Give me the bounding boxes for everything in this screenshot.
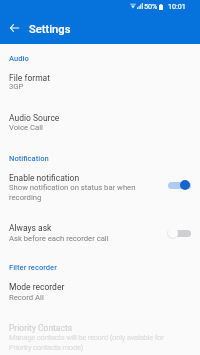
staticText: Enable notification (9, 173, 80, 183)
button[interactable] (0, 219, 200, 246)
staticText: Mode recorder (9, 282, 65, 292)
staticText: File format (9, 73, 50, 83)
staticText: 3GP (9, 82, 24, 91)
staticText: Audio Source (9, 113, 60, 123)
staticText: Voice Call (9, 123, 43, 132)
staticText: 10:01 (168, 2, 186, 10)
staticText: Ask before each recorder call (9, 234, 109, 243)
button[interactable] (0, 278, 200, 304)
staticText: Notification (9, 154, 49, 163)
button[interactable] (0, 109, 200, 135)
staticText: Priority Contacts (9, 323, 73, 333)
staticText: Record All (9, 293, 44, 302)
staticText: Show notification on status bar when rec… (9, 183, 143, 202)
button[interactable]: Navigate up (4, 18, 26, 40)
staticText: Manage contacts will be record (only ava… (9, 333, 169, 351)
staticText: 50% (144, 2, 158, 10)
staticText: Always ask (9, 223, 52, 233)
staticText: Audio (9, 54, 29, 63)
button[interactable]: Enabled (165, 177, 194, 193)
staticText: Settings (29, 23, 71, 36)
staticText: Filter recorder (9, 263, 57, 272)
button[interactable] (0, 69, 200, 95)
button[interactable]: Disabled (165, 225, 194, 241)
button[interactable] (0, 169, 200, 206)
